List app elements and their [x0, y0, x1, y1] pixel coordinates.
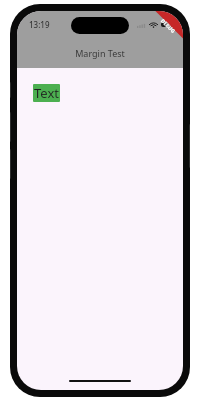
other: Home indicator	[69, 380, 131, 382]
button[interactable]: Text	[33, 84, 60, 102]
staticText: 13:19	[29, 19, 50, 30]
staticText: Text	[34, 84, 59, 102]
staticText: DEBUG	[159, 18, 177, 35]
staticText: Margin Test	[75, 47, 125, 59]
